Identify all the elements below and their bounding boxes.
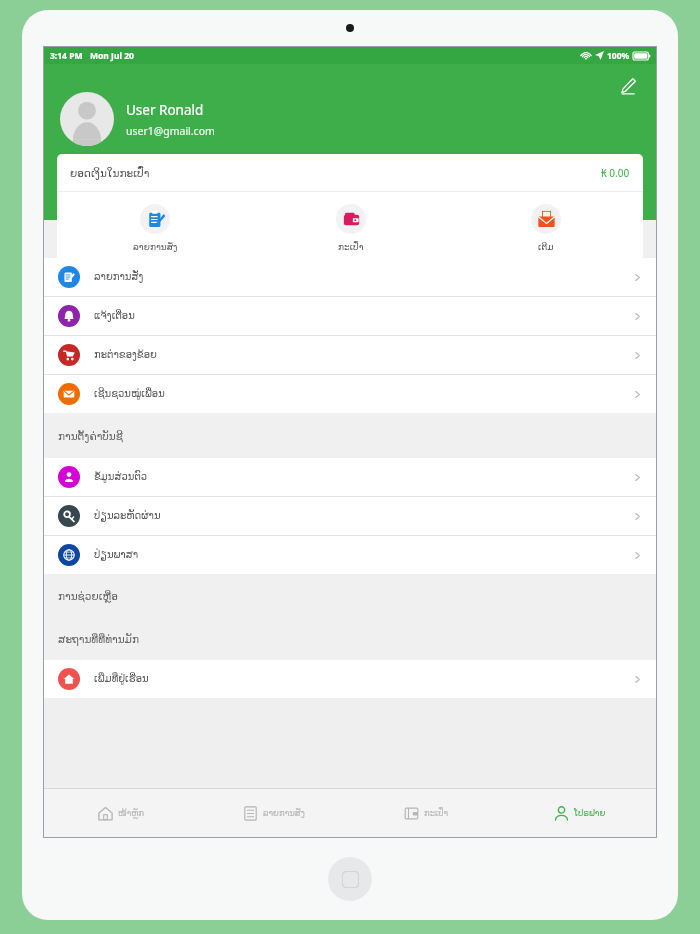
staticText: ເຊີນຊວນໝູ່ເພື່ອນ [94, 388, 165, 400]
staticText: ການຊ່ວຍເຫຼືອ [58, 590, 118, 602]
staticText: ກະເປົ໋າ [338, 242, 364, 252]
staticText: 100% [607, 50, 630, 62]
button[interactable]: ປ່ຽນພາສາ [44, 536, 656, 574]
button[interactable]: ໂປຣຟາຍ [503, 789, 656, 837]
staticText: ແຈ້ງເຕືອນ [94, 310, 135, 322]
staticText: ກະເປົ໋າ [424, 808, 449, 818]
button[interactable]: ເພີ່ມທີ່ຢູ່ເຮືອນ [44, 660, 656, 698]
button[interactable]: ຂໍ້ມູນສ່ວນຕົວ [44, 458, 656, 496]
button[interactable]: ລາຍການສັ່ງ [197, 789, 350, 837]
staticText: ໜ້າຫຼັກ [118, 808, 144, 818]
staticText: Mon Jul 20 [90, 50, 134, 62]
staticText: ປ່ຽນລະຫັດຜ່ານ [94, 510, 161, 522]
button[interactable]: ກະເປົ໋າ [350, 789, 503, 837]
staticText: ລາຍການສັ່ງ [263, 808, 305, 818]
button[interactable]: ລາຍການສັ່ງ [57, 192, 253, 263]
button[interactable]: ລາຍການສັ່ງ [44, 258, 656, 296]
button[interactable]: ເຕີມ [448, 192, 643, 263]
button[interactable]: ແຈ້ງເຕືອນ [44, 297, 656, 335]
staticText: user1@gmail.com [126, 124, 215, 138]
staticText: ສະຖານທີ່ທີ່ທ່ານມັກ [58, 633, 139, 645]
staticText: ຂໍ້ມູນສ່ວນຕົວ [94, 471, 148, 483]
staticText: ລາຍການສັ່ງ [94, 271, 144, 283]
staticText: ເພີ່ມທີ່ຢູ່ເຮືອນ [94, 673, 149, 685]
button[interactable]: ປ່ຽນລະຫັດຜ່ານ [44, 497, 656, 535]
staticText: ປ່ຽນພາສາ [94, 549, 139, 561]
staticText: ກະຕ່າຂອງຂ້ອຍ [94, 349, 157, 361]
staticText: ການຕັ້ງຄ່າບັນຊີ [58, 430, 123, 442]
staticText: ຍອດເງິນໃນກະເປົ໋າ [70, 167, 150, 179]
staticText: 3:14 PM [50, 50, 83, 62]
staticText: ລາຍການສັ່ງ [133, 242, 178, 252]
staticText: User Ronald [126, 101, 204, 119]
staticText: ເຕີມ [538, 242, 554, 252]
staticText: ໂປຣຟາຍ [574, 808, 606, 818]
staticText: ₭ 0.00 [601, 166, 630, 180]
button[interactable]: ກະຕ່າຂອງຂ້ອຍ [44, 336, 656, 374]
button[interactable]: ກະເປົ໋າ [253, 192, 448, 263]
button[interactable]: Edit profile [614, 72, 642, 100]
button[interactable]: ໜ້າຫຼັກ [44, 789, 197, 837]
button[interactable]: ເຊີນຊວນໝູ່ເພື່ອນ [44, 375, 656, 413]
